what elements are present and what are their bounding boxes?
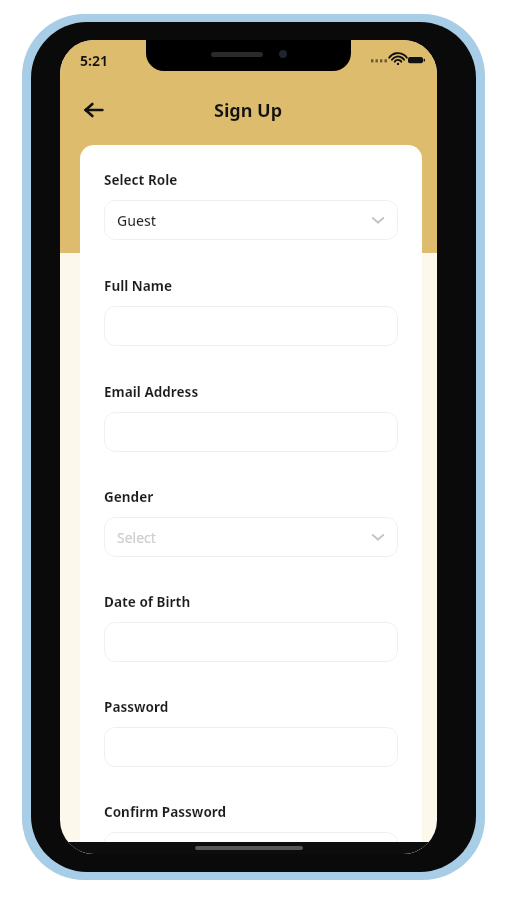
- staticText: Confirm Password: [104, 803, 227, 821]
- staticText: Gender: [104, 488, 154, 506]
- button[interactable]: [104, 622, 398, 662]
- button[interactable]: Select: [104, 517, 398, 557]
- button[interactable]: Back: [74, 90, 114, 130]
- button[interactable]: [104, 306, 398, 346]
- staticText: Email Address: [104, 383, 199, 401]
- staticText: Full Name: [104, 277, 173, 295]
- button[interactable]: [104, 832, 398, 854]
- staticText: Password: [104, 698, 169, 716]
- staticText: Guest: [117, 211, 157, 230]
- staticText: Date of Birth: [104, 593, 191, 611]
- button[interactable]: [104, 727, 398, 767]
- staticText: Sign Up: [214, 98, 283, 123]
- staticText: 5:21: [80, 51, 108, 70]
- button[interactable]: [104, 412, 398, 452]
- staticText: Select: [117, 528, 156, 547]
- staticText: Select Role: [104, 171, 178, 189]
- button[interactable]: Guest: [104, 200, 398, 240]
